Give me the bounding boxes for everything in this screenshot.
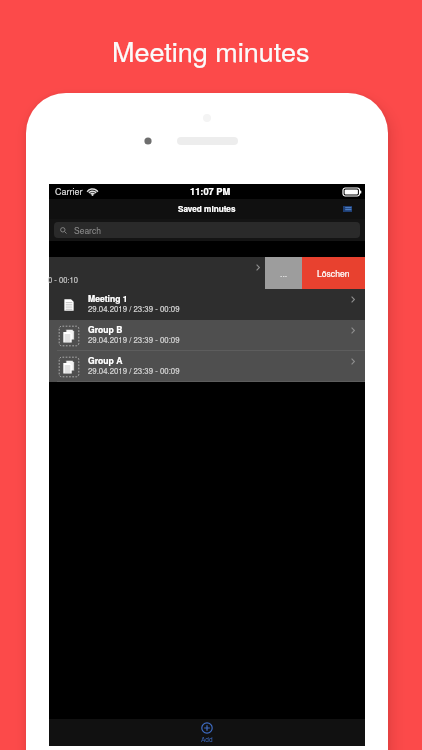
staticText: Search [74,224,101,236]
button[interactable]: Add [49,719,365,746]
staticText: 29.04.2019 / 23:39 - 00:09 [88,334,180,345]
button[interactable]: Group B [49,320,365,351]
button[interactable]: Search [54,222,360,238]
staticText: 0 - 00:10 [48,274,78,285]
staticText: 29.04.2019 / 23:39 - 00:09 [88,303,180,314]
staticText: Meeting minutes [112,31,310,70]
staticText: 11:07 PM [190,185,231,198]
staticText: Group A [88,354,123,366]
staticText: Carrier [55,185,83,198]
staticText: Meeting 1 [88,292,128,304]
staticText: Saved minutes [178,203,236,215]
button[interactable]: Meeting 1 [49,289,365,320]
button[interactable]: Löschen [302,257,365,289]
button[interactable]: Edit [342,204,352,214]
staticText: Add [201,735,213,744]
staticText: 29.04.2019 / 23:39 - 00:09 [88,365,180,376]
button[interactable]: ... [265,257,302,289]
button[interactable]: Group A [49,351,365,382]
staticText: Group B [88,323,123,335]
staticText: Löschen [317,267,350,279]
staticText: ... [280,267,288,279]
